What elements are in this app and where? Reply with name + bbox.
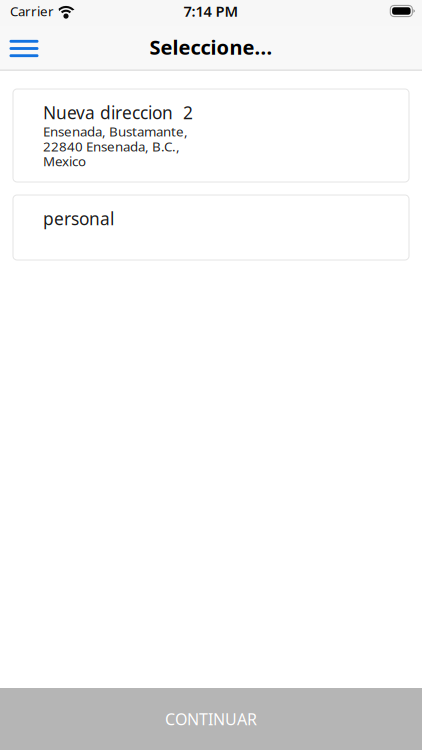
staticText: Ensenada, Bustamante, xyxy=(43,122,188,140)
staticText: Mexico xyxy=(43,152,86,170)
staticText: Nueva direccion 2 xyxy=(43,101,193,124)
button[interactable]: personal xyxy=(13,195,409,260)
staticText: 7:14 PM xyxy=(183,1,238,21)
staticText: 22840 Ensenada, B.C., xyxy=(43,137,180,155)
button[interactable]: Menu xyxy=(5,26,43,70)
staticText: CONTINUAR xyxy=(165,708,257,730)
staticText: Seleccione... xyxy=(149,34,272,60)
staticText: personal xyxy=(43,207,114,230)
button[interactable]: CONTINUAR xyxy=(0,688,422,750)
staticText: Carrier xyxy=(10,2,54,20)
button[interactable]: Nueva direccion 2 xyxy=(13,89,409,182)
